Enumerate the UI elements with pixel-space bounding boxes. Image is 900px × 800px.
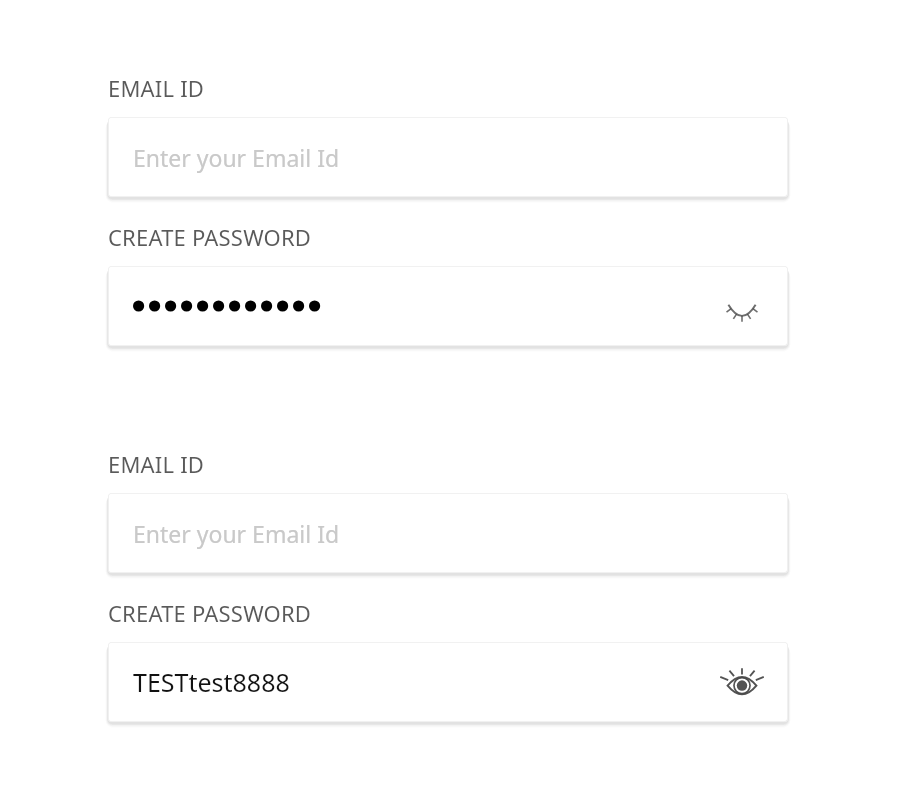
staticText: CREATE PASSWORD bbox=[108, 222, 312, 252]
button[interactable]: Hide password bbox=[720, 660, 764, 704]
staticText: CREATE PASSWORD bbox=[108, 598, 312, 628]
button[interactable]: Enter your Email Id bbox=[108, 117, 788, 197]
staticText: TESTtest8888 bbox=[133, 665, 290, 699]
button[interactable]: Show password bbox=[108, 266, 788, 346]
button[interactable]: Show password bbox=[720, 284, 764, 328]
staticText: EMAIL ID bbox=[108, 73, 205, 103]
staticText: Enter your Email Id bbox=[133, 518, 340, 549]
staticText: Enter your Email Id bbox=[133, 142, 340, 173]
staticText: EMAIL ID bbox=[108, 449, 205, 479]
button[interactable]: Enter your Email Id bbox=[108, 493, 788, 573]
button[interactable]: TESTtest8888 bbox=[108, 642, 788, 722]
